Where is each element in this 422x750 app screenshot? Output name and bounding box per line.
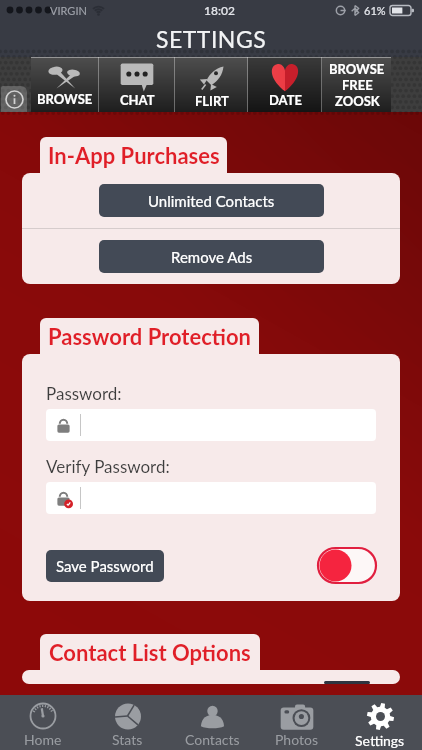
button[interactable]: Photos [254,695,338,750]
staticText: 61% [364,4,386,17]
button[interactable]: Home [0,695,85,750]
button[interactable]: Settings [338,695,422,750]
staticText: Home [24,731,62,748]
staticText: Save Password [56,557,154,575]
staticText: Contact List Options [49,639,251,665]
button[interactable]: Password Protection [40,318,259,354]
staticText: BROWSE [329,61,385,77]
staticText: Password Protection [48,323,252,349]
staticText: Contacts [185,731,240,748]
staticText: Photos [275,731,318,748]
staticText: Settings [355,732,405,749]
button[interactable]: Contacts [170,695,254,750]
staticText: 18:02 [204,3,235,17]
button[interactable]: Stats [85,695,170,750]
button[interactable]: In-App Purchases [40,137,227,173]
button[interactable]: DATE [248,57,322,112]
staticText: In-App Purchases [48,142,220,168]
button[interactable] [46,409,376,441]
button[interactable]: Remove Ads [22,229,400,284]
staticText: FLIRT [195,93,229,107]
button[interactable]: Password protection toggle [318,548,376,583]
button[interactable]: Info [1,86,27,112]
button[interactable]: CHAT [99,57,175,112]
button[interactable]: BROWSE [31,57,99,112]
staticText: BROWSE [37,91,93,107]
staticText: Password: [46,383,122,403]
staticText: CHAT [120,92,155,107]
button[interactable] [46,482,376,514]
button[interactable]: Unlimited Contacts [22,173,400,228]
staticText: VIRGIN [50,4,87,17]
staticText: SETTINGS [156,25,267,53]
button[interactable]: Save Password [46,550,164,582]
staticText: ZOOSK [335,93,380,109]
staticText: Remove Ads [171,248,253,266]
button[interactable]: Contact List Options [40,634,260,670]
button[interactable]: FLIRT [175,57,248,112]
button[interactable] [324,681,370,684]
staticText: Unlimited Contacts [148,192,275,210]
staticText: Verify Password: [46,456,170,476]
staticText: FREE [342,77,373,93]
staticText: DATE [269,92,302,107]
staticText: Stats [112,731,143,748]
button[interactable]: BROWSE [322,57,391,112]
